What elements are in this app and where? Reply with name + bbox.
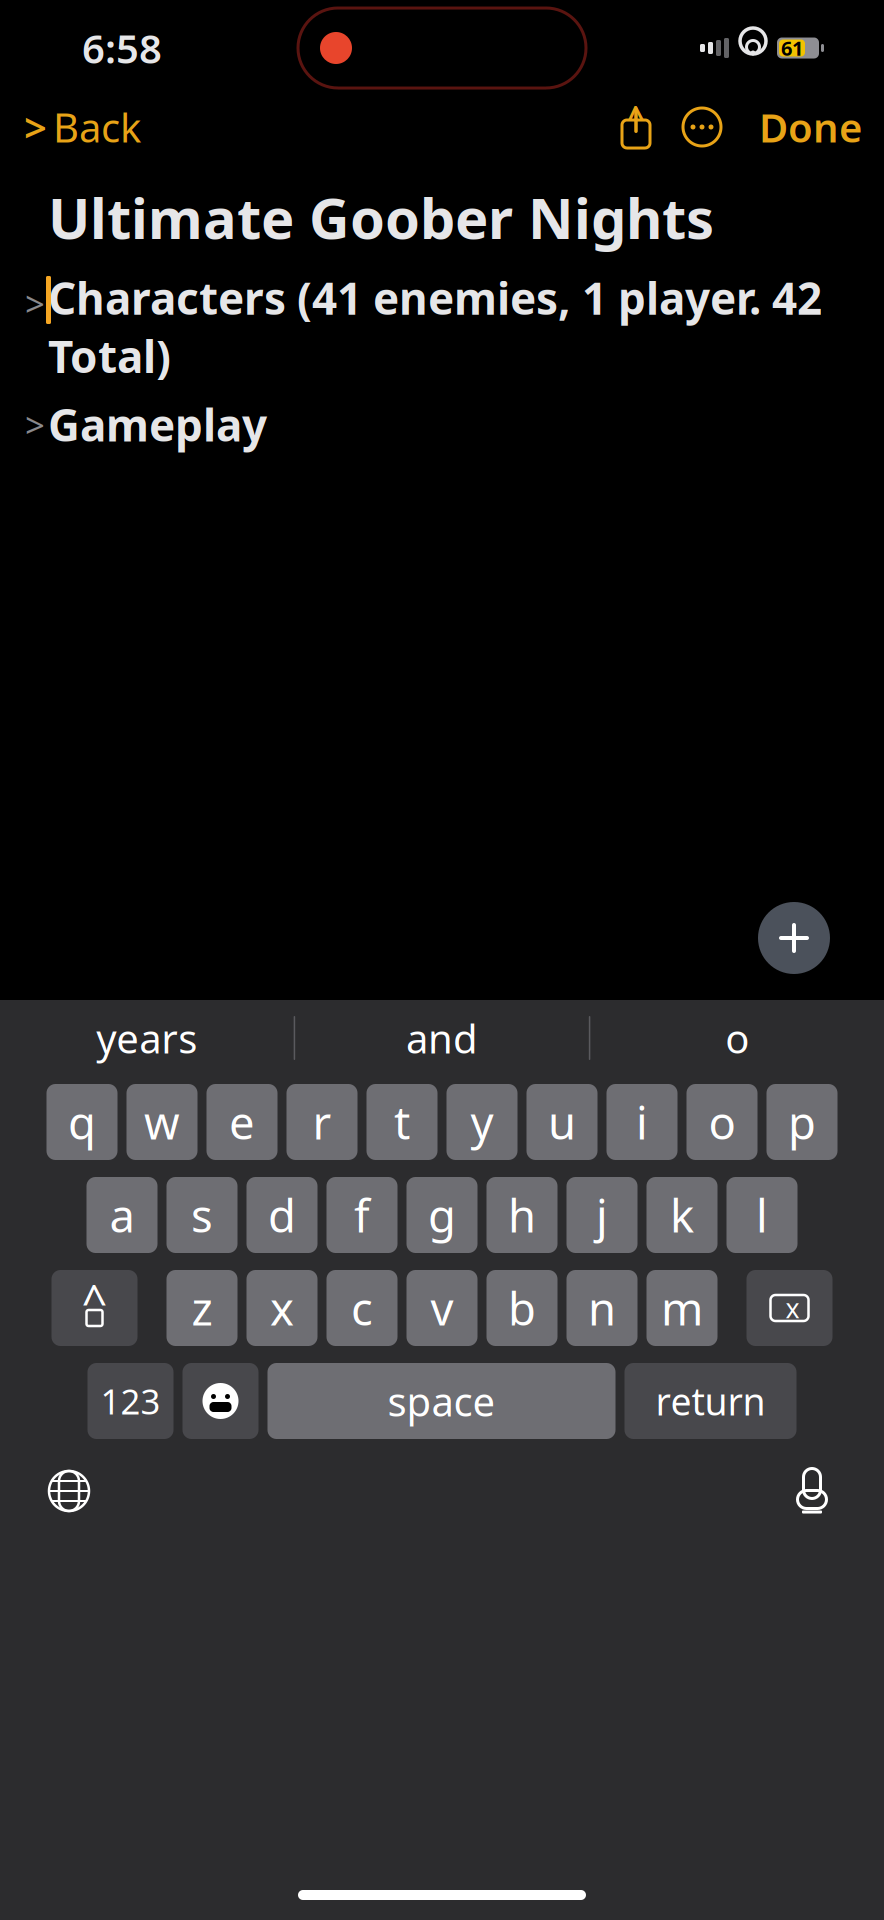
- button[interactable]: w: [126, 1084, 197, 1160]
- staticText: w: [144, 1092, 180, 1152]
- button[interactable]: Shift: [51, 1270, 137, 1346]
- staticText: Done: [759, 100, 862, 153]
- staticText: 123: [100, 1378, 160, 1424]
- staticText: l: [756, 1185, 768, 1245]
- staticText: v: [430, 1278, 453, 1338]
- staticText: x: [785, 1290, 799, 1326]
- staticText: t: [394, 1092, 410, 1152]
- staticText: Ultimate Goober Nights: [48, 180, 714, 254]
- staticText: u: [548, 1092, 576, 1152]
- button[interactable]: e: [206, 1084, 277, 1160]
- staticText: g: [428, 1185, 456, 1245]
- staticText: a: [109, 1185, 134, 1245]
- staticText: z: [191, 1278, 212, 1338]
- button[interactable]: m: [646, 1270, 717, 1346]
- button[interactable]: l: [726, 1177, 797, 1253]
- button[interactable]: Share: [605, 105, 667, 149]
- button[interactable]: c: [326, 1270, 397, 1346]
- staticText: q: [68, 1092, 96, 1152]
- staticText: c: [351, 1278, 373, 1338]
- button[interactable]: d: [246, 1177, 317, 1253]
- staticText: i: [636, 1092, 648, 1152]
- staticText: >: [24, 100, 47, 153]
- button[interactable]: years: [0, 1006, 294, 1070]
- staticText: Gameplay: [48, 395, 267, 454]
- staticText: >: [25, 280, 45, 326]
- button[interactable]: i: [606, 1084, 677, 1160]
- button[interactable]: v: [406, 1270, 477, 1346]
- staticText: h: [508, 1185, 536, 1245]
- button[interactable]: >: [0, 92, 141, 161]
- staticText: b: [508, 1278, 536, 1338]
- staticText: ^: [81, 1270, 107, 1330]
- staticText: Characters (41 enemies, 1 player. 42 Tot…: [48, 268, 822, 385]
- button[interactable]: h: [486, 1177, 557, 1253]
- staticText: e: [229, 1092, 255, 1152]
- staticText: m: [661, 1278, 703, 1338]
- button[interactable]: Next keyboard: [0, 1468, 92, 1514]
- button[interactable]: f: [326, 1177, 397, 1253]
- button[interactable]: j: [566, 1177, 637, 1253]
- staticText: d: [268, 1185, 296, 1245]
- button[interactable]: g: [406, 1177, 477, 1253]
- staticText: 6:58: [82, 21, 162, 74]
- button[interactable]: o: [590, 1006, 884, 1070]
- button[interactable]: a: [86, 1177, 157, 1253]
- button[interactable]: k: [646, 1177, 717, 1253]
- staticText: years: [96, 1011, 197, 1064]
- staticText: Back: [53, 100, 141, 153]
- button[interactable]: y: [446, 1084, 517, 1160]
- button[interactable]: Done: [737, 92, 884, 161]
- staticText: p: [788, 1092, 816, 1152]
- staticText: space: [387, 1374, 495, 1427]
- staticText: s: [191, 1185, 213, 1245]
- staticText: f: [354, 1185, 370, 1245]
- button[interactable]: b: [486, 1270, 557, 1346]
- button[interactable]: s: [166, 1177, 237, 1253]
- button[interactable]: return: [624, 1363, 796, 1439]
- staticText: and: [406, 1011, 478, 1064]
- button[interactable]: Delete: [746, 1270, 832, 1346]
- button[interactable]: Dictate: [792, 1465, 884, 1517]
- staticText: r: [312, 1092, 331, 1152]
- staticText: >: [25, 401, 45, 447]
- staticText: j: [596, 1185, 608, 1245]
- button[interactable]: r: [286, 1084, 357, 1160]
- staticText: k: [670, 1185, 694, 1245]
- button[interactable]: Add: [758, 902, 830, 974]
- button[interactable]: t: [366, 1084, 437, 1160]
- button[interactable]: and: [295, 1006, 589, 1070]
- staticText: 61: [781, 35, 803, 61]
- button[interactable]: q: [46, 1084, 117, 1160]
- button[interactable]: space: [267, 1363, 615, 1439]
- staticText: ^: [627, 95, 644, 134]
- button[interactable]: u: [526, 1084, 597, 1160]
- button[interactable]: Emoji: [182, 1363, 258, 1439]
- button[interactable]: x: [246, 1270, 317, 1346]
- button[interactable]: o: [686, 1084, 757, 1160]
- staticText: o: [725, 1011, 749, 1064]
- button[interactable]: 123: [87, 1363, 173, 1439]
- button[interactable]: p: [766, 1084, 837, 1160]
- button[interactable]: More options: [667, 106, 737, 148]
- staticText: return: [655, 1376, 765, 1426]
- staticText: y: [470, 1092, 493, 1152]
- staticText: x: [270, 1278, 294, 1338]
- staticText: o: [708, 1092, 735, 1152]
- staticText: n: [588, 1278, 616, 1338]
- button[interactable]: z: [166, 1270, 237, 1346]
- button[interactable]: n: [566, 1270, 637, 1346]
